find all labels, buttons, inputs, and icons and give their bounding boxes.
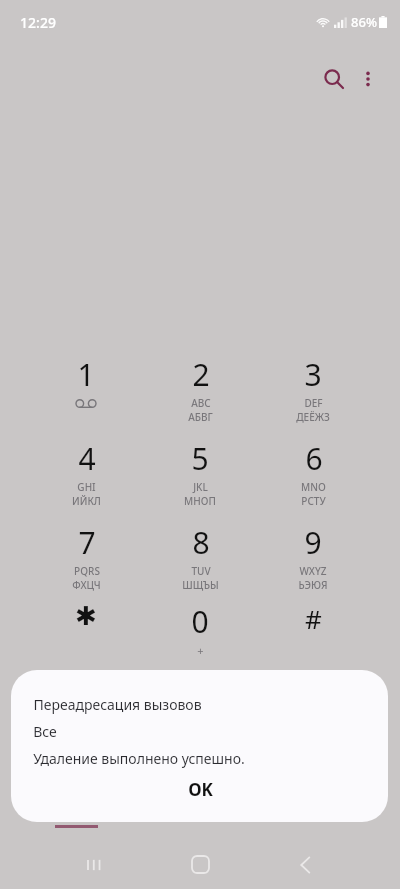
staticText: РСТУ bbox=[301, 494, 326, 508]
button[interactable]: OK bbox=[135, 770, 265, 808]
staticText: ФХЦЧ bbox=[72, 578, 101, 592]
staticText: OK bbox=[188, 778, 213, 801]
staticText: 4 bbox=[78, 438, 96, 479]
staticText: Переадресация вызовов bbox=[33, 695, 202, 714]
staticText: 0 bbox=[191, 601, 209, 642]
button[interactable]: 8 bbox=[144, 522, 256, 600]
staticText: GHI bbox=[77, 480, 96, 494]
staticText: 3 bbox=[304, 354, 322, 395]
button[interactable]: 9 bbox=[257, 522, 369, 600]
staticText: # bbox=[305, 601, 322, 636]
staticText: JKL bbox=[193, 480, 208, 494]
staticText: 9 bbox=[304, 522, 322, 563]
button[interactable]: Home bbox=[172, 840, 228, 889]
staticText: АБВГ bbox=[188, 410, 213, 424]
staticText: ЬЭЮЯ bbox=[298, 578, 328, 592]
staticText: Все bbox=[33, 722, 57, 741]
button[interactable]: 5 bbox=[144, 438, 256, 516]
staticText: 8 bbox=[192, 522, 210, 563]
staticText: DEF bbox=[304, 396, 323, 410]
staticText: ШЩЪЫ bbox=[182, 578, 219, 592]
staticText: WXYZ bbox=[299, 564, 327, 578]
button[interactable]: Back bbox=[277, 840, 333, 889]
button[interactable]: More options bbox=[347, 58, 389, 100]
staticText: 1 bbox=[77, 354, 95, 395]
staticText: Удаление выполнено успешно. bbox=[33, 749, 245, 768]
staticText: МНОП bbox=[184, 494, 216, 508]
button[interactable]: Search bbox=[313, 58, 355, 100]
staticText: ✱ bbox=[75, 601, 97, 631]
staticText: + bbox=[197, 643, 204, 658]
staticText: TUV bbox=[191, 564, 211, 578]
button[interactable]: 4 bbox=[30, 438, 142, 516]
staticText: 86% bbox=[351, 13, 377, 31]
staticText: PQRS bbox=[74, 564, 100, 578]
staticText: 7 bbox=[78, 522, 96, 563]
staticText: 12:29 bbox=[20, 13, 56, 32]
button[interactable]: 0 bbox=[144, 601, 256, 679]
button[interactable]: 3 bbox=[257, 354, 369, 432]
button[interactable]: Recents bbox=[67, 840, 123, 889]
button[interactable]: 7 bbox=[30, 522, 142, 600]
staticText: 5 bbox=[191, 438, 209, 479]
staticText: ДЕЁЖЗ bbox=[296, 410, 330, 424]
button[interactable]: # bbox=[257, 601, 369, 679]
button[interactable]: 1 bbox=[30, 354, 142, 432]
staticText: MNO bbox=[301, 480, 326, 494]
staticText: ИЙКЛ bbox=[72, 494, 101, 508]
staticText: 6 bbox=[305, 438, 323, 479]
button[interactable]: ✱ bbox=[30, 601, 142, 679]
button[interactable]: 6 bbox=[257, 438, 369, 516]
button[interactable]: 2 bbox=[144, 354, 256, 432]
staticText: 2 bbox=[192, 354, 210, 395]
staticText: ABC bbox=[191, 396, 211, 410]
